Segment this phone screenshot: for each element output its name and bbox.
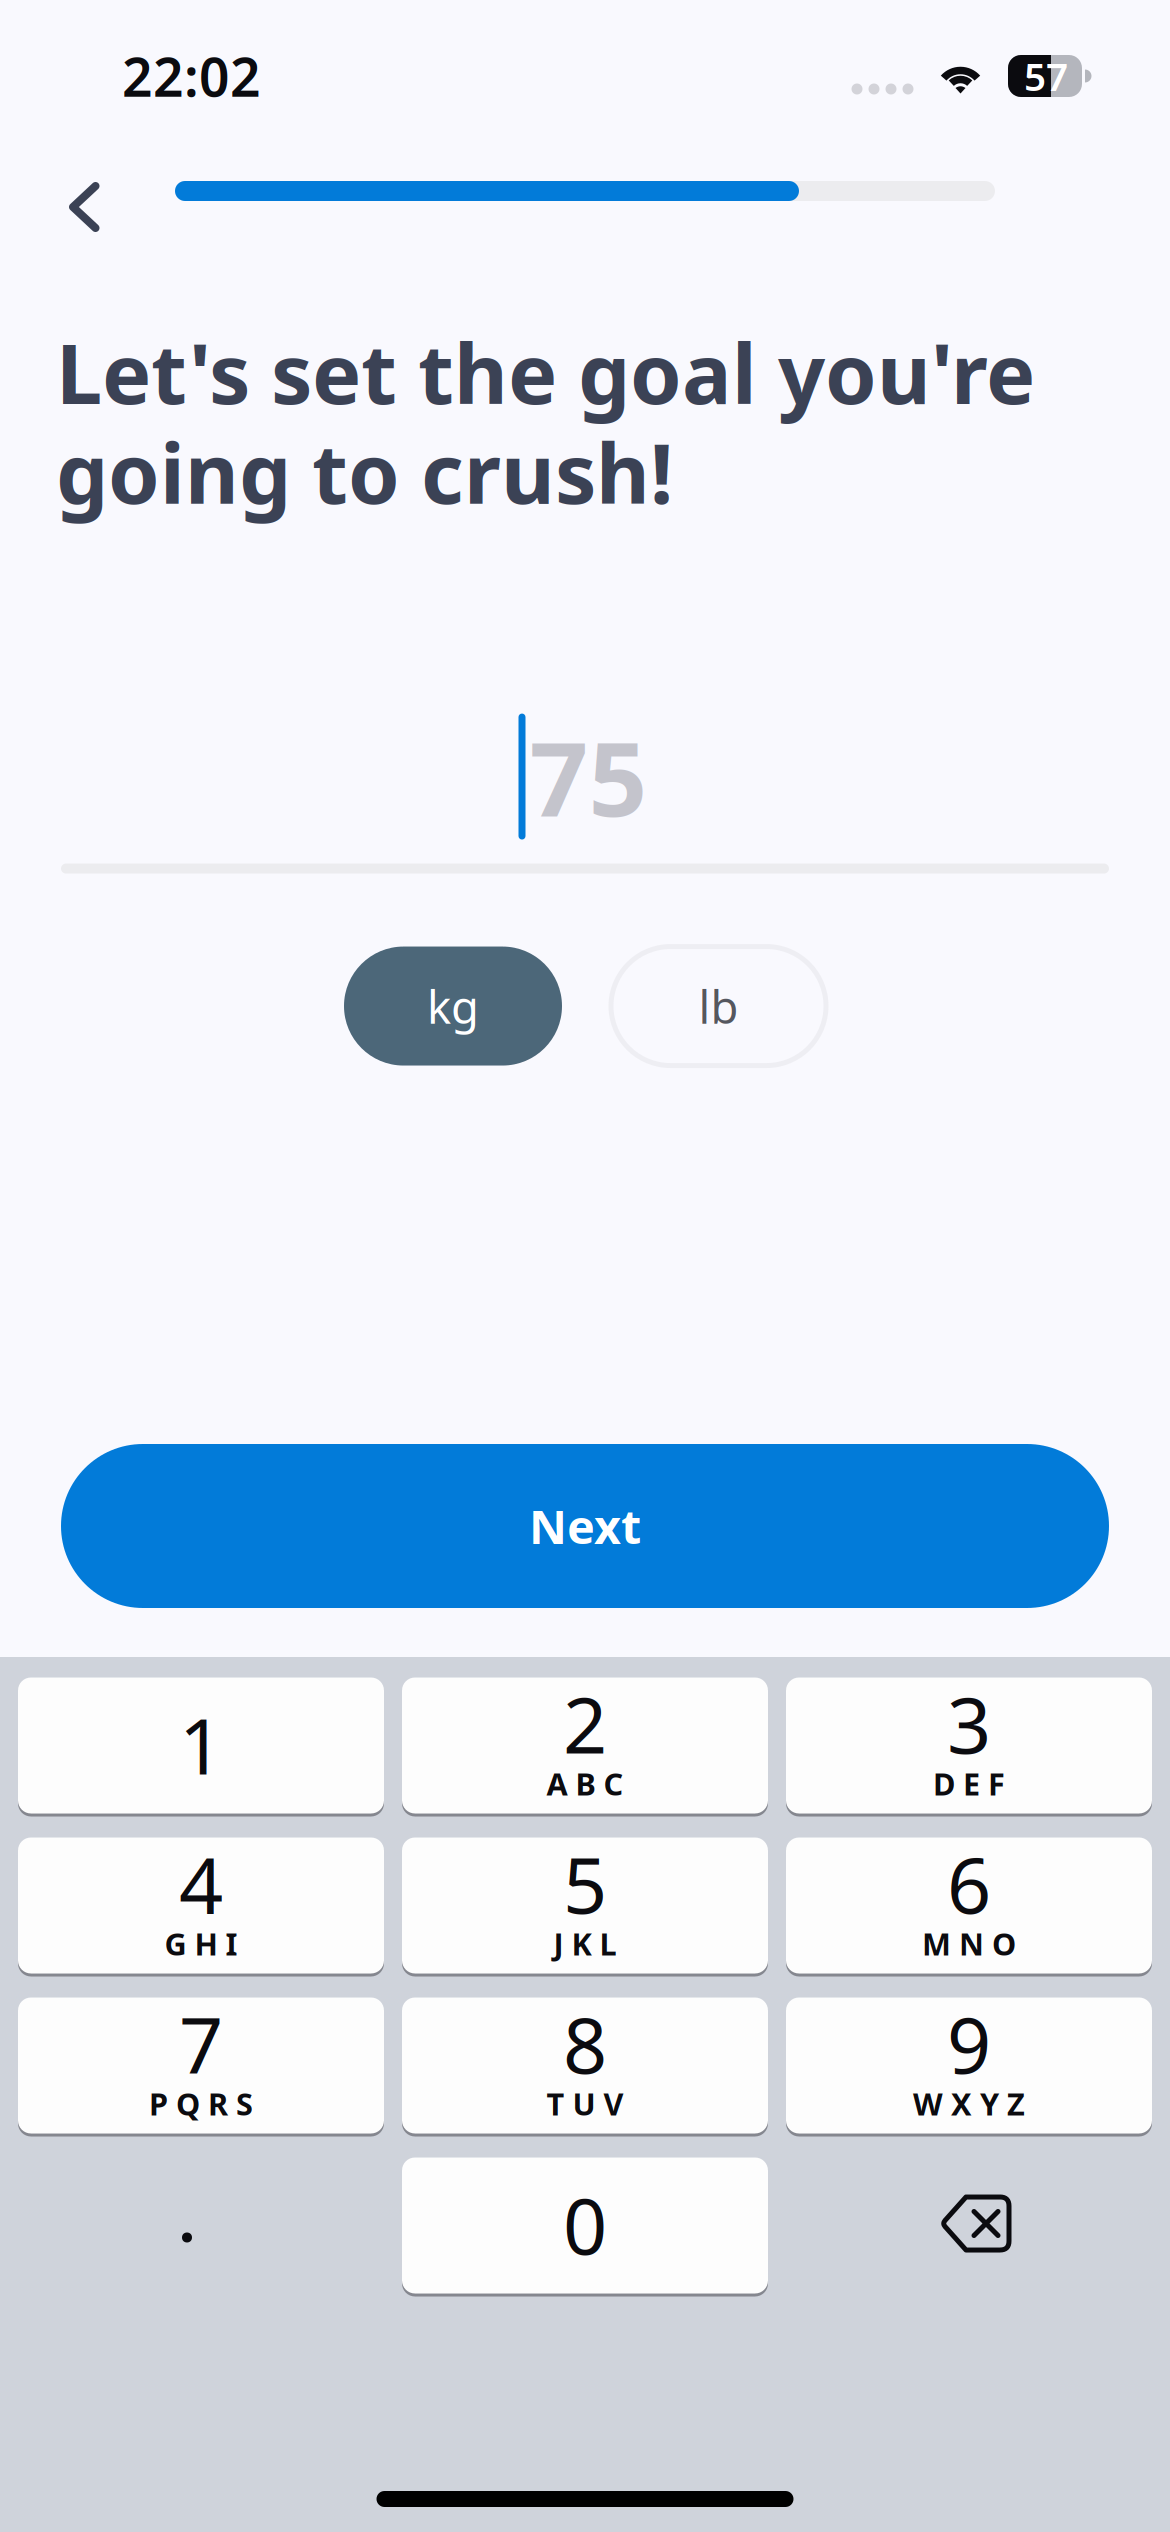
button[interactable]: 4 (18, 1836, 384, 1975)
staticText: 5 (563, 1832, 607, 1935)
staticText: kg (427, 976, 479, 1036)
staticText: T U V (546, 2083, 623, 2124)
staticText: 75 (529, 708, 647, 845)
staticText: 2 (563, 1672, 607, 1775)
button[interactable]: 0 (402, 2156, 768, 2295)
staticText: W X Y Z (913, 2083, 1025, 2124)
button[interactable]: Delete (786, 2156, 1152, 2295)
staticText: 22:02 (122, 41, 261, 111)
staticText: going to crush! (56, 417, 673, 527)
staticText: 3 (947, 1672, 991, 1775)
button[interactable]: Decimal point (18, 2156, 384, 2295)
button[interactable]: 8 (402, 1996, 768, 2135)
staticText: Next (529, 1495, 641, 1557)
staticText: G H I (164, 1923, 237, 1964)
staticText: 7 (179, 1992, 223, 2095)
staticText: 6 (947, 1832, 991, 1935)
staticText: M N O (922, 1923, 1016, 1964)
staticText: 1 (179, 1693, 223, 1796)
button[interactable]: 6 (786, 1836, 1152, 1975)
staticText: 9 (947, 1992, 991, 2095)
button[interactable]: 2 (402, 1676, 768, 1815)
button[interactable]: lb (611, 947, 826, 1066)
staticText: Let's set the goal you're (56, 317, 1035, 427)
button[interactable]: 5 (402, 1836, 768, 1975)
button[interactable]: Back (42, 149, 126, 233)
staticText: A B C (546, 1763, 623, 1804)
staticText: P Q R S (149, 2083, 253, 2124)
button[interactable]: 1 (18, 1676, 384, 1815)
staticText: 8 (563, 1992, 607, 2095)
staticText: 4 (179, 1832, 223, 1935)
button[interactable]: Next (61, 1444, 1109, 1608)
staticText: 57 (1024, 50, 1068, 102)
button[interactable]: 7 (18, 1996, 384, 2135)
staticText: 0 (563, 2173, 607, 2276)
button[interactable]: 9 (786, 1996, 1152, 2135)
button[interactable]: 3 (786, 1676, 1152, 1815)
staticText: D E F (933, 1763, 1005, 1804)
staticText: lb (698, 976, 738, 1036)
staticText: J K L (553, 1923, 616, 1964)
button[interactable]: kg (344, 947, 562, 1066)
